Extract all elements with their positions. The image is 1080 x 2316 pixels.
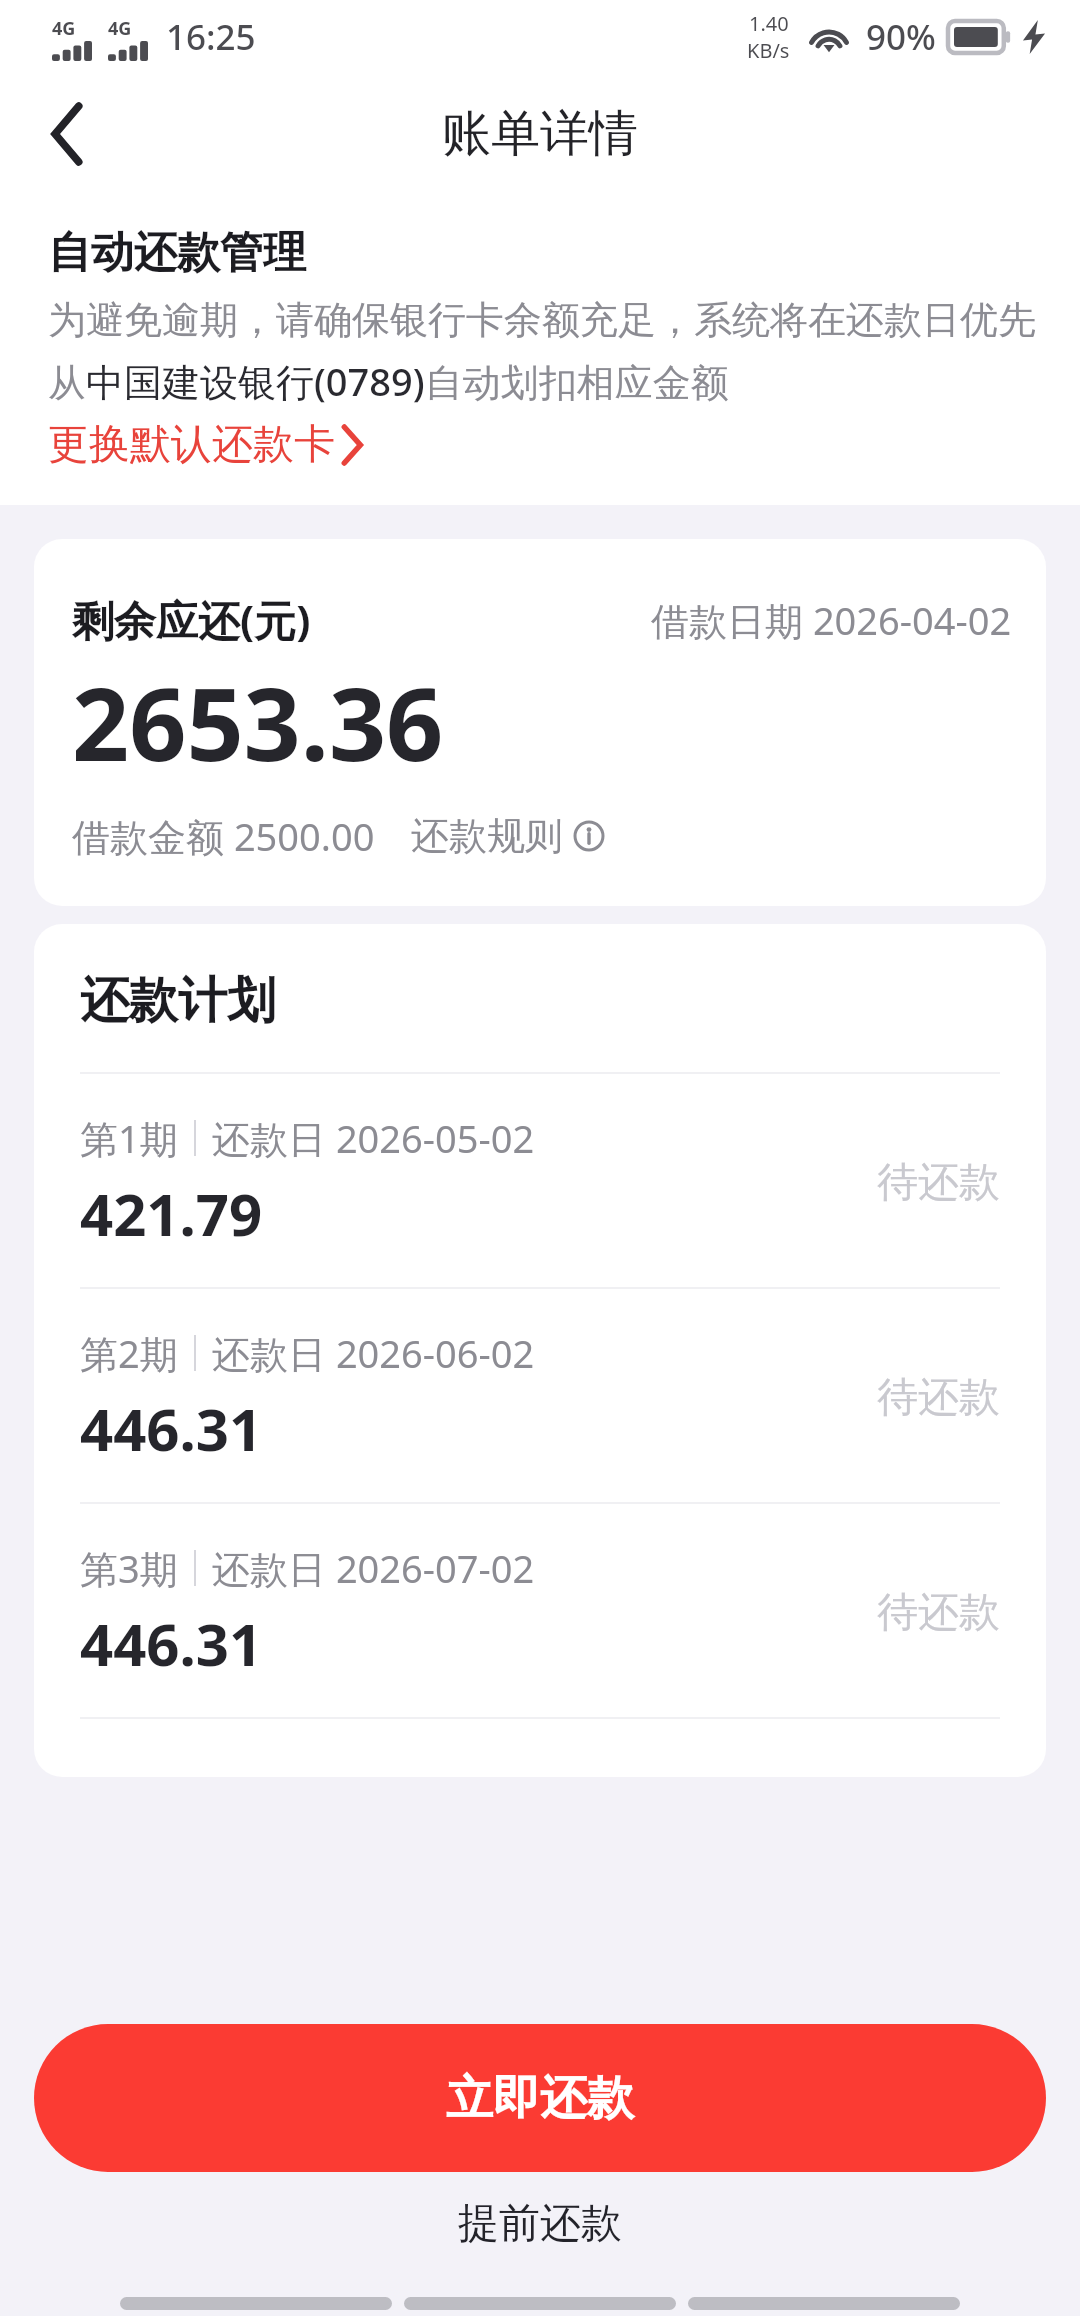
staticText: 剩余应还(元) [72, 591, 311, 648]
staticText: 借款日期 2026-04-02 [651, 594, 1012, 646]
staticText: 2653.36 [72, 654, 444, 790]
staticText: 446.31 [80, 1604, 263, 1683]
staticText: 借款金额 2500.00 [72, 810, 375, 862]
staticText: 4G [108, 16, 132, 41]
button[interactable]: 更换默认还款卡 [48, 419, 363, 471]
staticText: 16:25 [166, 13, 256, 61]
staticText: 第1期 [80, 1112, 178, 1164]
staticText: 提前还款 [458, 2198, 622, 2250]
other: 还款规则说明 [573, 820, 605, 852]
button[interactable]: 导航 [120, 2297, 392, 2310]
staticText: 待还款 [877, 1372, 1000, 1424]
button[interactable]: 导航 [688, 2297, 960, 2310]
staticText: 90% [866, 13, 936, 61]
staticText: 还款规则 [411, 812, 563, 860]
button[interactable]: 提前还款 [0, 2172, 1080, 2276]
button[interactable]: 第1期 [34, 1074, 1046, 1287]
staticText: 4G [52, 16, 76, 41]
button[interactable]: 第3期 [34, 1504, 1046, 1717]
staticText: 第3期 [80, 1542, 178, 1594]
staticText: 账单详情 [442, 103, 638, 165]
staticText: 为避免逾期，请确保银行卡余额充足，系统将在还款日优先从中国建设银行(0789)自… [48, 296, 1038, 407]
staticText: 待还款 [877, 1587, 1000, 1639]
staticText: 立即还款 [446, 2069, 634, 2128]
staticText: 446.31 [80, 1389, 263, 1468]
staticText: 自动还款管理 [48, 226, 306, 280]
button[interactable]: 还款规则 [411, 812, 605, 860]
button[interactable]: 第2期 [34, 1289, 1046, 1502]
staticText: KB/s [747, 37, 790, 64]
staticText: 第2期 [80, 1327, 178, 1379]
button[interactable]: 剩余应还(元) [34, 539, 1046, 906]
staticText: 待还款 [877, 1157, 1000, 1209]
staticText: 还款日 2026-05-02 [212, 1112, 535, 1164]
staticText: 还款日 2026-07-02 [212, 1542, 535, 1594]
staticText: 1.40 [749, 10, 789, 37]
button[interactable]: 导航 [404, 2297, 676, 2310]
button[interactable]: 立即还款 [34, 2024, 1046, 2172]
staticText: 还款日 2026-06-02 [212, 1327, 535, 1379]
staticText: 421.79 [80, 1174, 263, 1253]
staticText: 更换默认还款卡 [48, 419, 335, 471]
staticText: 还款计划 [80, 970, 276, 1032]
button[interactable]: 返回 [18, 84, 118, 184]
